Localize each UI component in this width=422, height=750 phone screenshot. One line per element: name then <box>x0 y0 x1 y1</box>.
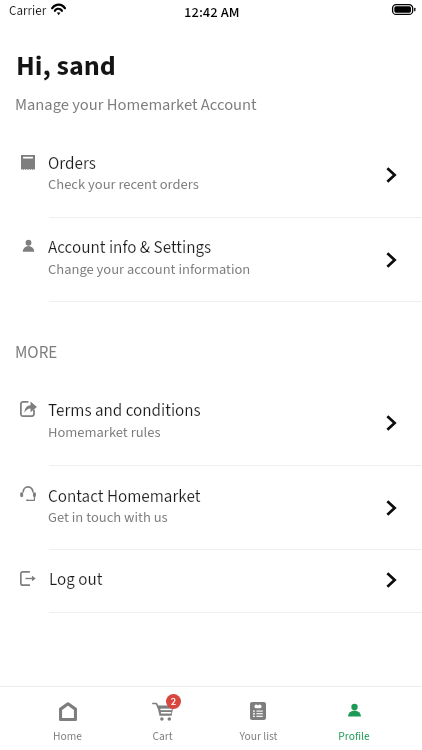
staticText: Manage your Homemarket Account <box>15 93 257 116</box>
button[interactable]: Account info & Settings <box>0 217 422 302</box>
button[interactable]: Terms and conditions <box>0 380 422 465</box>
other: Your list <box>250 702 266 720</box>
staticText: 2 <box>171 695 176 709</box>
staticText: Log out <box>49 568 103 592</box>
staticText: MORE <box>15 341 58 365</box>
button[interactable]: Contact Homemarket <box>0 465 422 550</box>
staticText: Hi, sand <box>16 46 116 86</box>
staticText: Change your account information <box>48 259 251 280</box>
staticText: Homemarket rules <box>48 422 161 443</box>
staticText: Home <box>53 728 82 744</box>
other: Home <box>59 702 77 721</box>
staticText: Profile <box>338 728 370 744</box>
button[interactable]: Profile <box>306 687 402 713</box>
staticText: Orders <box>48 152 96 176</box>
other: Profile <box>348 704 361 718</box>
staticText: Cart <box>152 728 173 744</box>
staticText: Account info & Settings <box>48 236 212 260</box>
button[interactable]: Your list <box>210 687 306 713</box>
staticText: Check your recent orders <box>48 174 199 195</box>
button[interactable]: Cart <box>115 687 210 713</box>
other: Cart <box>152 702 174 721</box>
staticText: Carrier <box>9 2 47 21</box>
button[interactable]: Home <box>20 687 115 713</box>
staticText: Contact Homemarket <box>48 485 201 509</box>
button[interactable]: Log out <box>0 549 422 611</box>
staticText: Terms and conditions <box>48 399 201 423</box>
button[interactable]: Orders <box>0 133 422 217</box>
staticText: Get in touch with us <box>48 507 168 528</box>
staticText: 12:42 AM <box>184 2 240 23</box>
staticText: Your list <box>239 728 278 744</box>
